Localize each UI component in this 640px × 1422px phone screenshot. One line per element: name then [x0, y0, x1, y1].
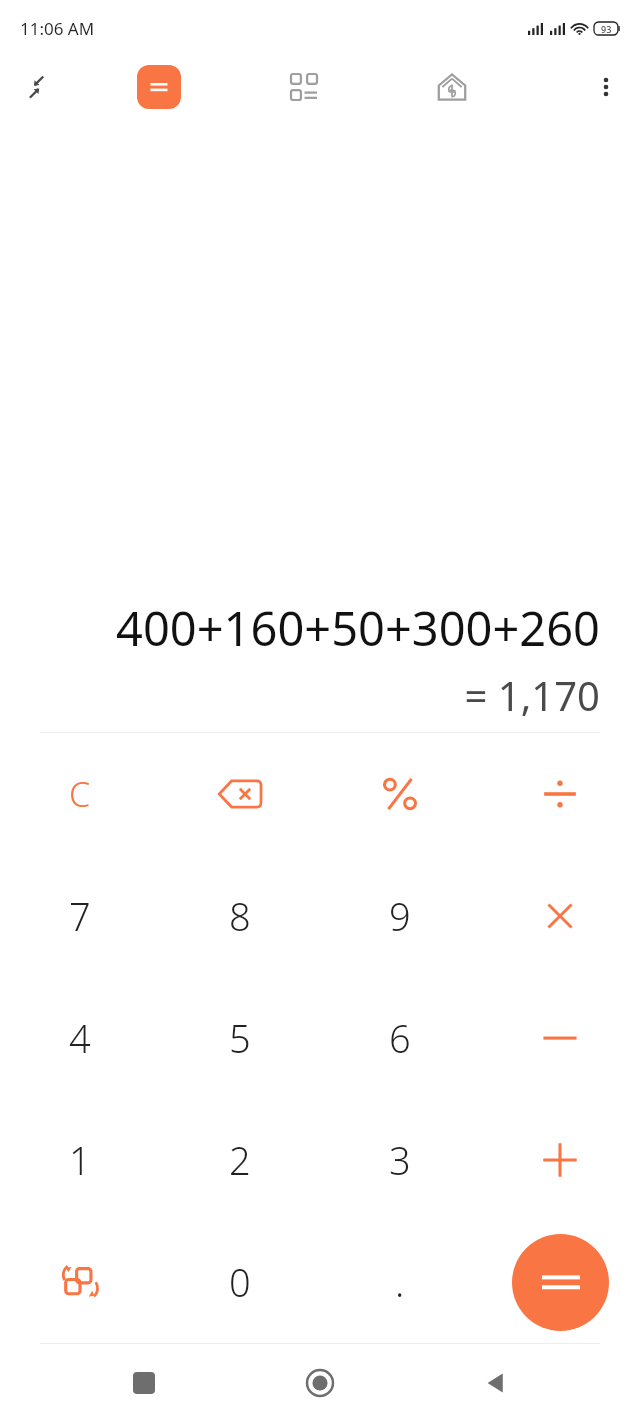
button[interactable]: Minus — [480, 977, 640, 1099]
button[interactable]: Back — [464, 1351, 528, 1415]
button[interactable]: Convert — [0, 1221, 160, 1343]
button[interactable]: Backspace — [160, 733, 320, 855]
staticText: 6 — [389, 1012, 411, 1064]
button[interactable]: More options — [582, 63, 630, 111]
staticText: 0 — [229, 1256, 251, 1308]
staticText: 93 — [601, 23, 612, 35]
button[interactable]: 3 — [320, 1099, 480, 1221]
button[interactable]: 0 — [160, 1221, 320, 1343]
button[interactable]: Divide — [480, 733, 640, 855]
button[interactable]: 1 — [0, 1099, 160, 1221]
button[interactable]: 8 — [160, 855, 320, 977]
staticText: 8 — [229, 890, 251, 942]
button[interactable]: 5 — [160, 977, 320, 1099]
button[interactable]: Home — [288, 1351, 352, 1415]
staticText: . — [395, 1256, 405, 1308]
staticText: 3 — [389, 1134, 411, 1186]
button[interactable]: Percent — [320, 733, 480, 855]
button[interactable]: Recents — [112, 1351, 176, 1415]
button[interactable]: Plus — [480, 1099, 640, 1221]
staticText: = 1,170 — [40, 668, 600, 722]
button[interactable]: 6 — [320, 977, 480, 1099]
button[interactable]: Collapse — [14, 63, 62, 111]
staticText: 5 — [229, 1012, 251, 1064]
button[interactable]: 9 — [320, 855, 480, 977]
staticText: 7 — [69, 890, 91, 942]
button[interactable]: Loan calculator — [425, 60, 479, 114]
button[interactable]: 4 — [0, 977, 160, 1099]
button[interactable]: Calculator — [135, 63, 183, 111]
button[interactable]: Multiply — [480, 855, 640, 977]
staticText: 400+160+50+300+260 — [40, 596, 600, 660]
button[interactable]: Equals — [480, 1221, 640, 1343]
button[interactable]: Converters — [278, 61, 330, 113]
staticText: 9 — [389, 890, 411, 942]
staticText: C — [69, 771, 91, 817]
button[interactable]: 2 — [160, 1099, 320, 1221]
staticText: 2 — [229, 1134, 251, 1186]
staticText: 4 — [69, 1012, 91, 1064]
button[interactable]: 7 — [0, 855, 160, 977]
staticText: 1 — [69, 1134, 91, 1186]
staticText: 11:06 AM — [20, 17, 95, 40]
button[interactable]: . — [320, 1221, 480, 1343]
button[interactable]: C — [0, 733, 160, 855]
